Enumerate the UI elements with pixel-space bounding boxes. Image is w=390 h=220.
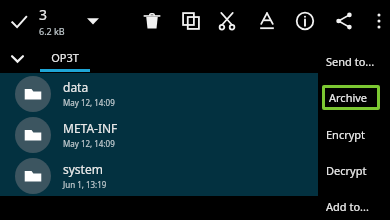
button[interactable]: Expand selection (80, 8, 106, 34)
button[interactable]: data (0, 73, 318, 114)
button[interactable]: Cut (213, 7, 241, 35)
button[interactable]: Send to... (322, 49, 380, 74)
staticText: data (63, 79, 89, 95)
staticText: Jun 1, 13:19 (63, 179, 107, 190)
button[interactable]: Encrypt (322, 122, 380, 147)
button[interactable]: system (0, 155, 318, 196)
staticText: 6.2 kB (39, 25, 65, 37)
button[interactable]: Add to... (322, 194, 380, 219)
staticText: Decrypt (326, 163, 367, 178)
button[interactable]: META-INF (0, 114, 318, 155)
button[interactable]: Copy (177, 7, 205, 35)
staticText: Archive (329, 90, 368, 105)
staticText: 3 (39, 5, 48, 24)
button[interactable]: Rename (253, 7, 281, 35)
button[interactable]: Archive (322, 85, 380, 110)
staticText: Encrypt (326, 127, 366, 142)
button[interactable]: More options (365, 7, 390, 35)
button[interactable]: Delete (138, 7, 166, 35)
staticText: May 12, 14:09 (63, 138, 115, 149)
button[interactable]: Done (6, 9, 32, 35)
staticText: May 12, 14:09 (63, 97, 115, 108)
staticText: Send to... (326, 54, 375, 69)
button[interactable]: Info (291, 7, 319, 35)
button[interactable]: OP3T (40, 42, 90, 73)
button[interactable]: Decrypt (322, 158, 380, 183)
staticText: Add to... (326, 199, 369, 214)
button[interactable]: Collapse (4, 45, 30, 71)
staticText: system (63, 161, 103, 177)
button[interactable]: Share (330, 7, 358, 35)
staticText: META-INF (63, 120, 118, 136)
staticText: OP3T (51, 50, 79, 65)
